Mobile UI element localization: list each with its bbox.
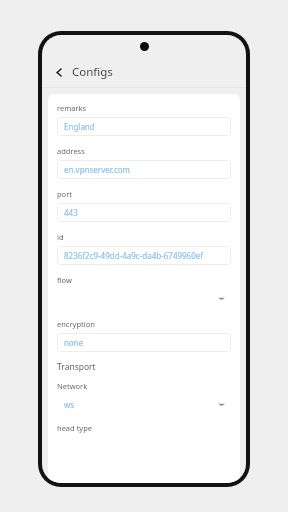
- button[interactable]: none: [57, 333, 231, 352]
- button[interactable]: [57, 287, 231, 309]
- staticText: address: [57, 146, 85, 156]
- staticText: remarks: [57, 103, 87, 113]
- staticText: id: [57, 232, 64, 242]
- staticText: 8236f2c9-49dd-4a9c-da4b-6749960ef: [64, 250, 204, 261]
- staticText: Network: [57, 381, 88, 391]
- button[interactable]: England: [57, 117, 231, 136]
- staticText: en.vpnserver.com: [64, 164, 131, 175]
- staticText: 443: [64, 207, 78, 218]
- staticText: port: [57, 189, 72, 199]
- button[interactable]: 8236f2c9-49dd-4a9c-da4b-6749960ef: [57, 246, 231, 265]
- button[interactable]: en.vpnserver.com: [57, 160, 231, 179]
- staticText: Configs: [72, 64, 113, 80]
- staticText: head type: [57, 423, 93, 433]
- button[interactable]: 443: [57, 203, 231, 222]
- staticText: ws: [64, 399, 75, 410]
- button[interactable]: ws: [57, 393, 231, 415]
- staticText: none: [64, 337, 84, 348]
- staticText: England: [64, 121, 95, 132]
- staticText: encryption: [57, 319, 95, 329]
- staticText: flow: [57, 275, 72, 285]
- button[interactable]: Back: [50, 63, 68, 81]
- staticText: Transport: [57, 361, 96, 373]
